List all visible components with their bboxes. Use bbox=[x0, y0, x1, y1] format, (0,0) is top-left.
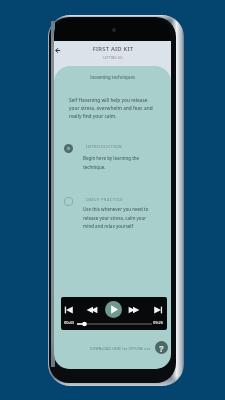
button[interactable]: Back bbox=[54, 44, 67, 57]
button[interactable]: Previous track bbox=[63, 303, 77, 317]
staticText: Self Havening will help you release your… bbox=[69, 97, 169, 120]
button[interactable]: DOWNLOAD HERE for OFFLINE use bbox=[84, 341, 154, 354]
button[interactable]: Play bbox=[105, 301, 122, 318]
staticText: Use this whenever you need to release yo… bbox=[83, 206, 168, 229]
staticText: 00:43 bbox=[64, 320, 84, 325]
button[interactable]: Next track bbox=[150, 303, 164, 317]
staticText: DAILY PRACTICE bbox=[86, 197, 166, 202]
button[interactable]: DAILY PRACTICE bbox=[62, 194, 167, 236]
button[interactable]: Rewind bbox=[85, 303, 99, 317]
staticText: ? bbox=[159, 342, 164, 354]
staticText: Begin here by learning the technique. bbox=[83, 155, 163, 170]
staticText: FIRST AID KIT bbox=[73, 45, 153, 53]
button[interactable]: Help bbox=[155, 341, 168, 354]
staticText: DOWNLOAD HERE for OFFLINE use bbox=[90, 346, 160, 351]
button[interactable]: Fast forward bbox=[127, 303, 141, 317]
staticText: LETTING GO bbox=[73, 56, 153, 60]
staticText: loosening techniques bbox=[54, 74, 171, 80]
staticText: INTRODUCTION bbox=[86, 144, 166, 149]
button[interactable]: INTRODUCTION bbox=[62, 141, 167, 175]
staticText: 09:26 bbox=[153, 320, 167, 325]
